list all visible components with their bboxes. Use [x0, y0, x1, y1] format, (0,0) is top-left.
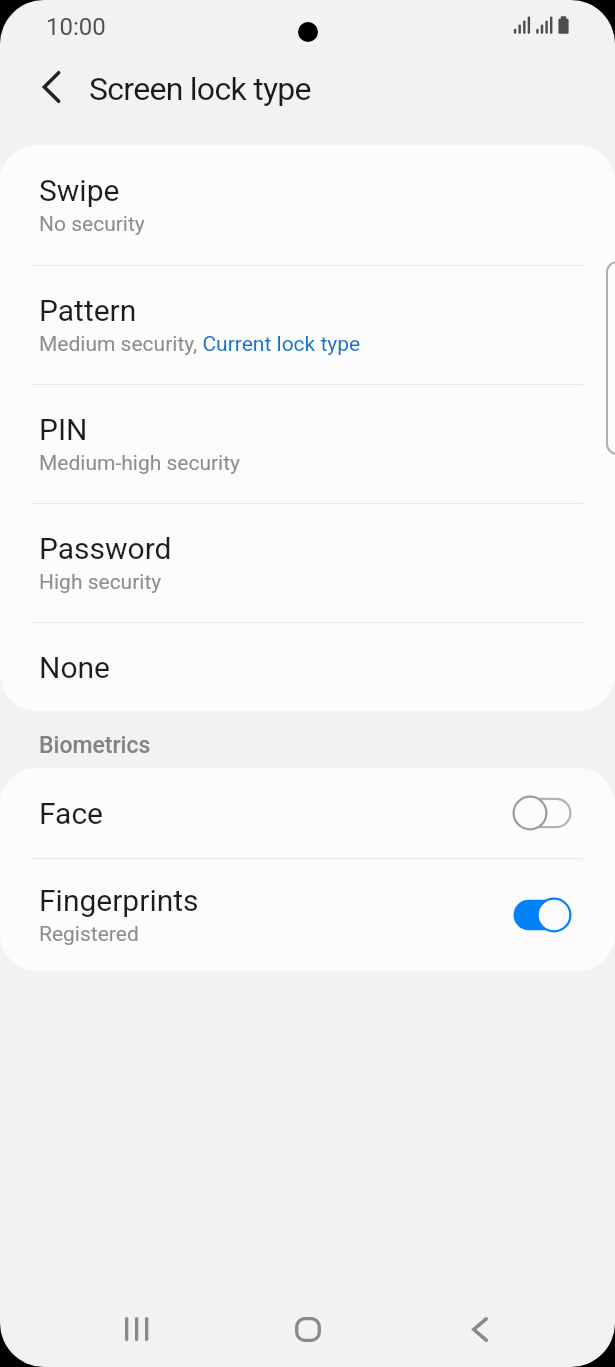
button[interactable]: Turn on	[512, 795, 572, 831]
button[interactable]: Navigate up	[22, 59, 78, 115]
staticText: Face	[39, 796, 104, 831]
button[interactable]: Password	[0, 504, 615, 622]
staticText: Swipe	[39, 173, 120, 208]
button[interactable]: Pattern	[0, 266, 615, 384]
staticText: Fingerprints	[39, 883, 199, 918]
staticText: Medium-high security	[39, 451, 241, 476]
button[interactable]: Home	[280, 1284, 336, 1367]
staticText: High security	[39, 570, 162, 595]
button[interactable]: PIN	[0, 385, 615, 503]
button[interactable]: Swipe	[0, 145, 615, 265]
staticText: Screen lock type	[89, 70, 311, 108]
button[interactable]: Turn off	[512, 897, 572, 933]
staticText: Biometrics	[39, 732, 151, 759]
staticText: Pattern	[39, 293, 137, 328]
staticText: 10:00	[46, 13, 106, 41]
staticText: Password	[39, 531, 172, 566]
staticText: No security	[39, 212, 145, 237]
button[interactable]: Face	[0, 768, 615, 858]
staticText: Registered	[39, 922, 139, 947]
staticText: PIN	[39, 412, 88, 447]
staticText: None	[39, 650, 110, 685]
button[interactable]: Fingerprints	[0, 859, 615, 971]
button[interactable]: None	[0, 623, 615, 711]
button[interactable]: Recent apps	[108, 1284, 164, 1367]
button[interactable]: Back	[452, 1284, 508, 1367]
staticText: Medium security, Current lock type	[39, 332, 361, 357]
